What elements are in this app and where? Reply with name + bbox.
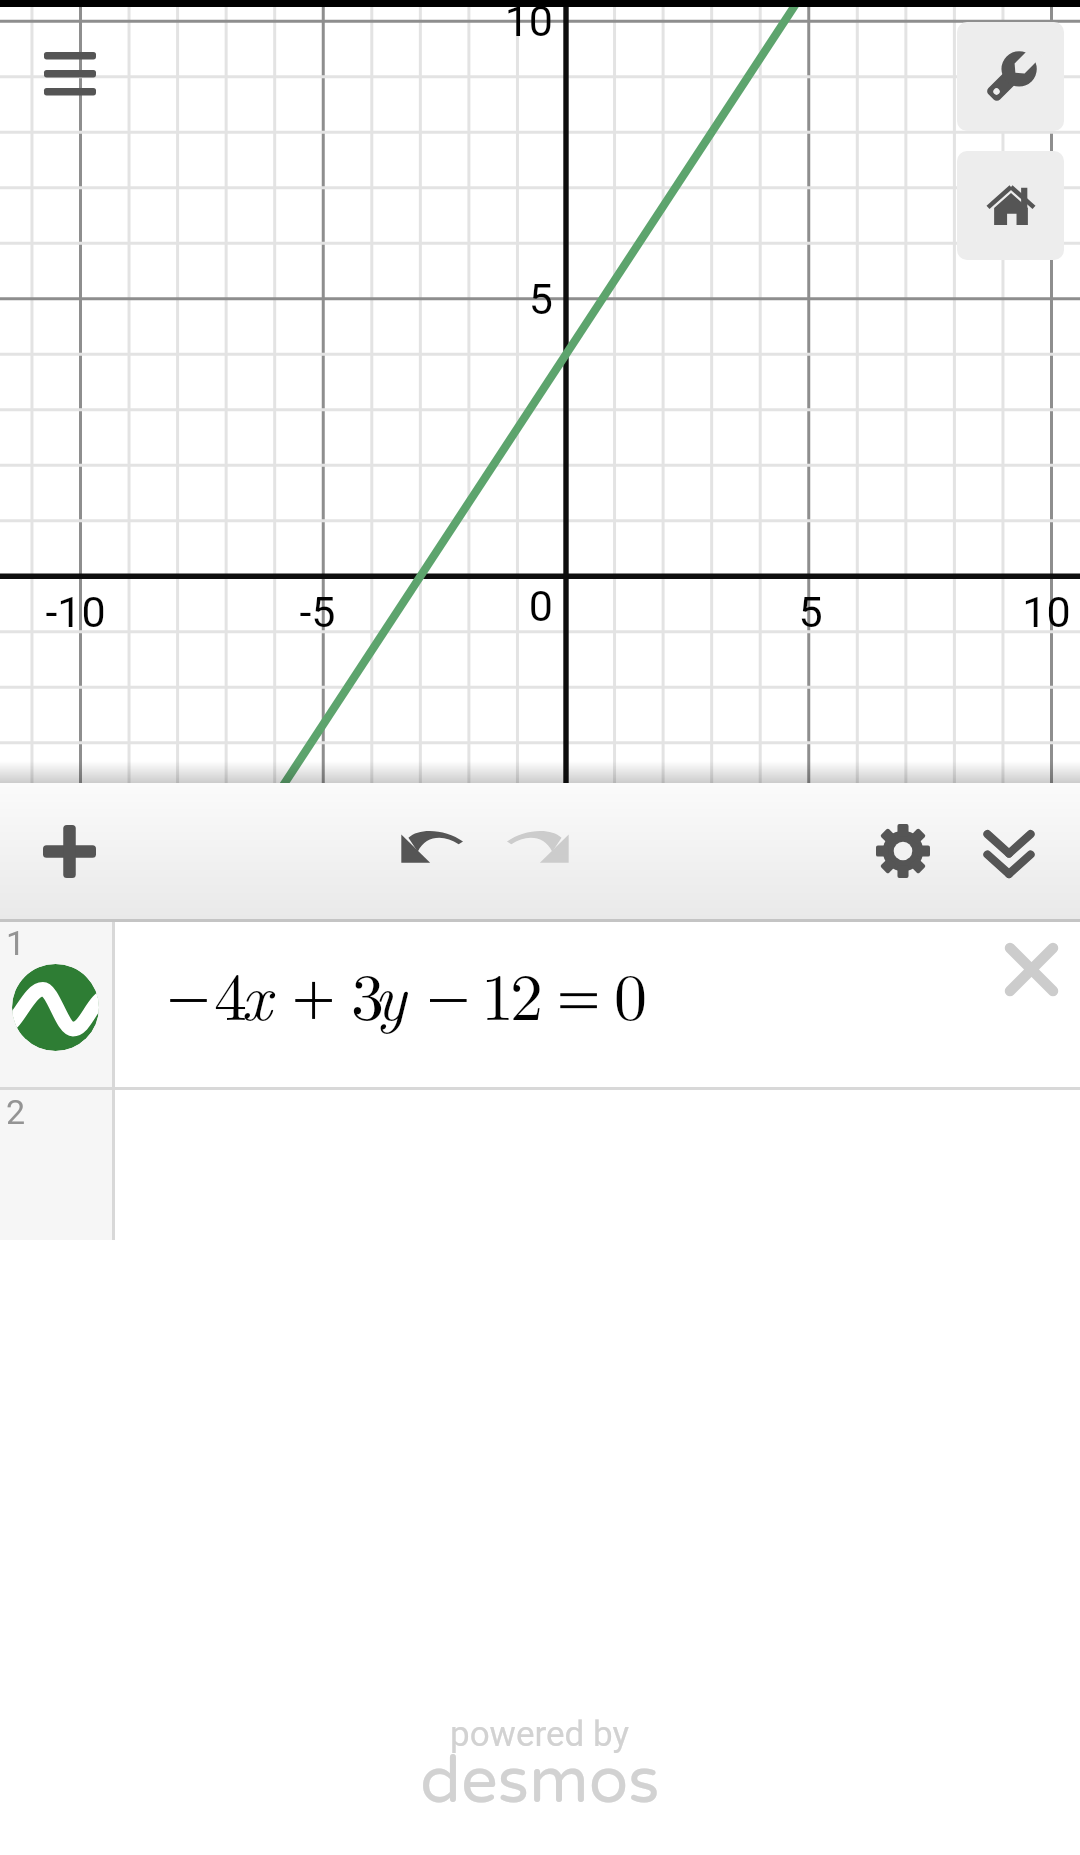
staticText: desmos	[420, 1742, 660, 1820]
staticText: 2	[6, 1092, 26, 1132]
staticText: 10	[1022, 587, 1071, 637]
button[interactable]: Expression 2	[0, 1088, 112, 1240]
staticText: powered by	[450, 1714, 630, 1755]
staticText: -5	[299, 587, 336, 637]
button[interactable]: Edit expression 1	[115, 919, 1080, 1088]
staticText: 3	[351, 946, 384, 1040]
button[interactable]: Delete expression 1	[975, 919, 1080, 1020]
staticText: y	[374, 946, 407, 1039]
button[interactable]: Home	[957, 151, 1064, 260]
button[interactable]: Edit expression 2	[115, 1088, 1080, 1240]
staticText: 5	[528, 274, 553, 324]
button[interactable]: Menu	[18, 26, 122, 120]
staticText: 1	[481, 946, 514, 1040]
button[interactable]: Redo	[488, 783, 588, 919]
staticText: 10	[504, 0, 553, 46]
staticText: 0	[528, 581, 553, 631]
staticText: x	[241, 946, 272, 1039]
staticText: 4	[214, 946, 247, 1040]
staticText: 0	[614, 946, 647, 1040]
button[interactable]: Graph settings	[957, 22, 1064, 131]
button[interactable]: Add expression	[19, 783, 119, 919]
button[interactable]: Undo	[382, 783, 482, 919]
button[interactable]: Hide plot 1	[0, 919, 112, 1088]
staticText: 1	[6, 923, 26, 963]
button[interactable]: Collapse list	[959, 783, 1059, 919]
button[interactable]: Graph settings	[853, 783, 953, 919]
staticText: 5	[798, 587, 823, 637]
staticText: 2	[510, 946, 543, 1040]
staticText: -10	[45, 587, 106, 637]
